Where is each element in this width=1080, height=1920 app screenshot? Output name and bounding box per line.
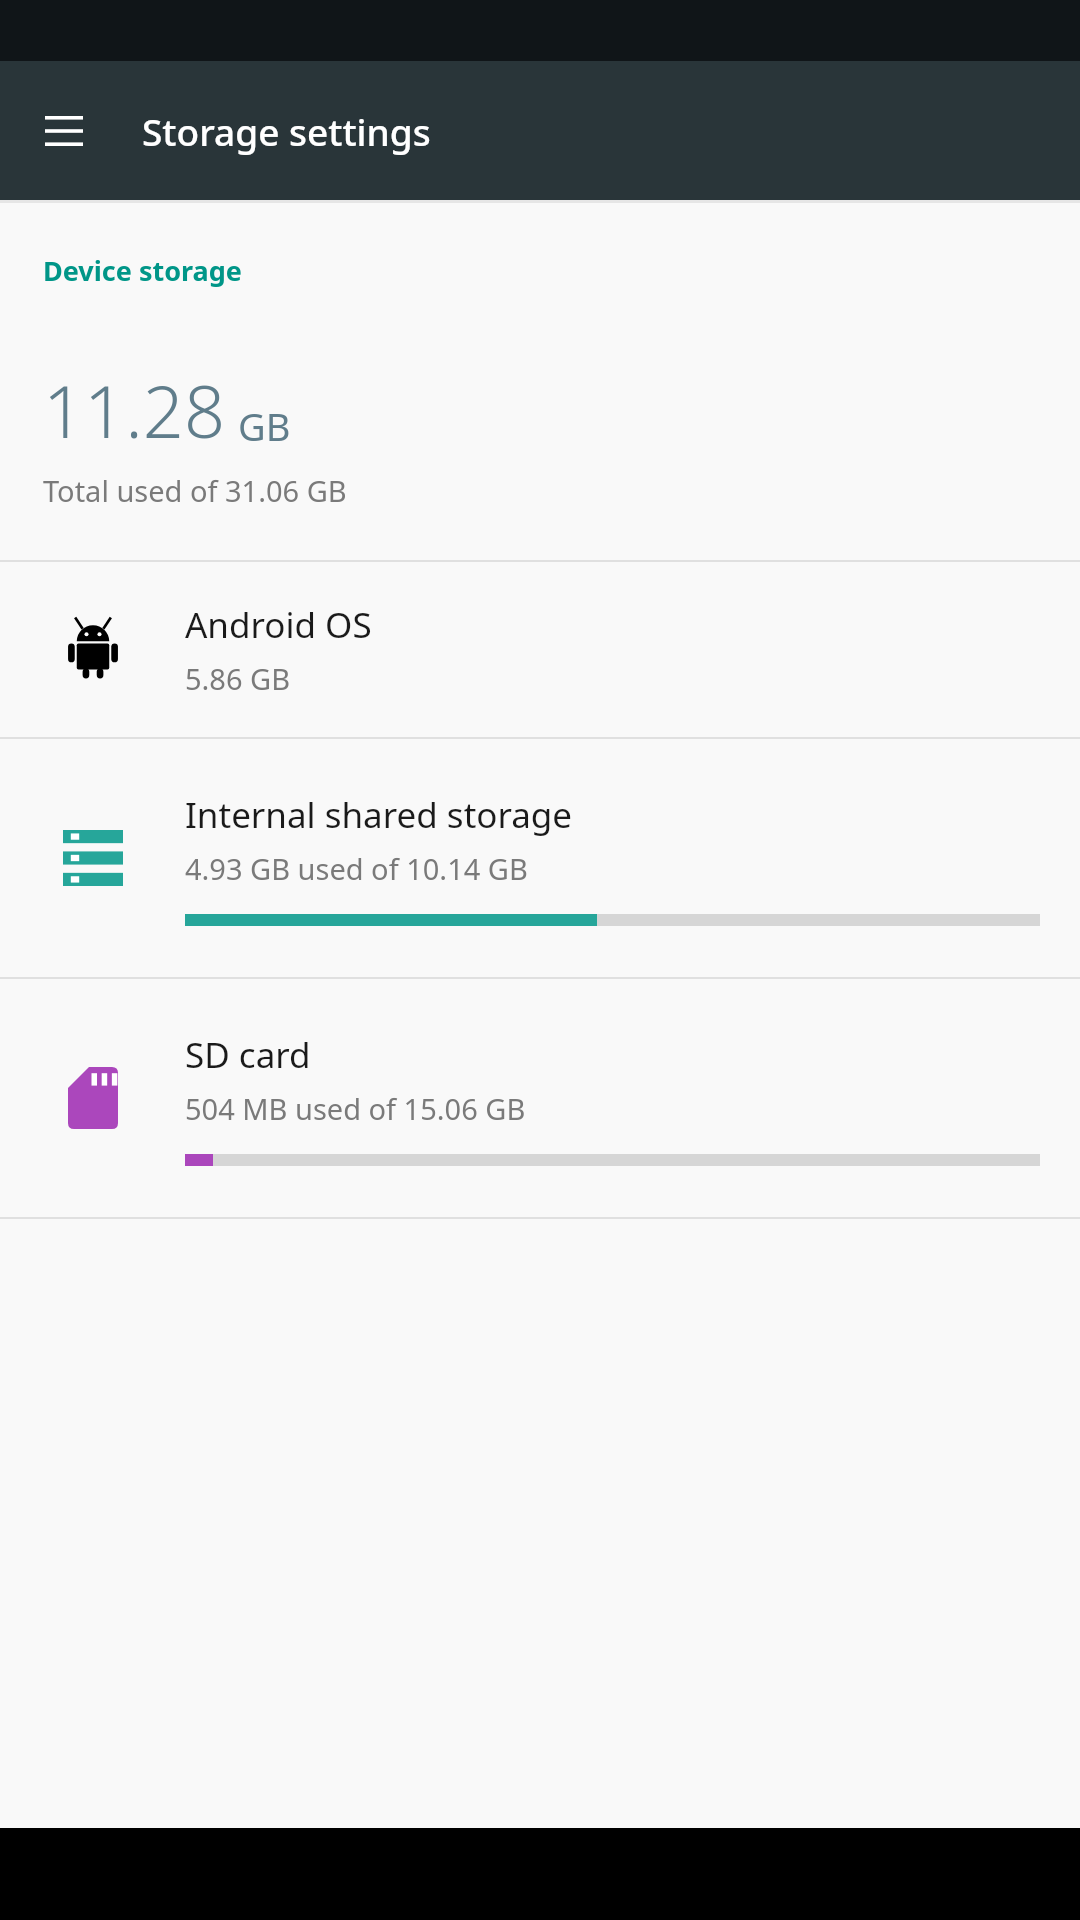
staticText: Internal shared storage [185,791,573,839]
staticText: 11.28 [43,361,226,459]
staticText: 4.93 GB used of 10.14 GB [185,849,528,888]
staticText: Android OS [185,601,372,649]
staticText: GB [238,400,291,452]
staticText: 5.86 GB [185,659,291,698]
staticText: Total used of 31.06 GB [43,471,347,510]
staticText: SD card [185,1031,311,1079]
staticText: Storage settings [142,106,431,156]
button[interactable]: Android OS [0,562,1080,737]
staticText: 504 MB used of 15.06 GB [185,1089,526,1128]
button[interactable]: Internal shared storage [0,739,1080,977]
button[interactable]: SD card [0,979,1080,1217]
staticText: Device storage [43,252,242,289]
button[interactable]: Open navigation menu [28,95,100,167]
